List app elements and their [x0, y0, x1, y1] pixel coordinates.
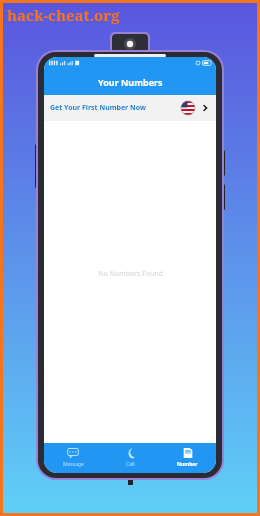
staticText: No Numbers Found [98, 269, 163, 279]
other: Open [200, 103, 210, 113]
button[interactable]: Get Your First Number Now [44, 95, 216, 121]
staticText: hack-cheat.org [7, 5, 120, 25]
staticText: Your Numbers [98, 76, 163, 88]
button[interactable]: Call [102, 443, 159, 473]
staticText: Call [126, 461, 135, 468]
button[interactable]: Number [159, 443, 216, 473]
button[interactable]: Message [44, 443, 102, 473]
staticText: Get Your First Number Now [50, 103, 146, 113]
staticText: Number [177, 461, 198, 468]
staticText: Message [63, 461, 84, 468]
